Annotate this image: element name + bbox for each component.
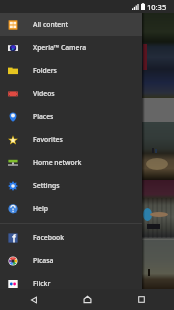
button[interactable]: Picasa <box>0 249 142 272</box>
staticText: Xperia™ Camera <box>33 43 87 52</box>
button[interactable]: Home <box>67 289 107 310</box>
staticText: Home network <box>33 158 82 167</box>
staticText: 10:35 <box>147 2 167 12</box>
staticText: Folders <box>33 66 57 75</box>
button[interactable]: Recents <box>121 289 161 310</box>
button[interactable]: Facebook <box>0 226 142 249</box>
button[interactable]: Xperia™ Camera <box>0 36 142 59</box>
button[interactable]: Help <box>0 197 142 220</box>
button[interactable]: Home network <box>0 151 142 174</box>
staticText: Flickr <box>33 279 51 288</box>
button[interactable]: Folders <box>0 59 142 82</box>
staticText: Help <box>33 204 49 213</box>
staticText: Favorites <box>33 135 63 144</box>
button[interactable]: Videos <box>0 82 142 105</box>
staticText: Places <box>33 112 54 121</box>
button[interactable]: Back <box>14 289 54 310</box>
staticText: All content <box>33 20 69 29</box>
button[interactable]: Places <box>0 105 142 128</box>
staticText: Videos <box>33 89 55 98</box>
button[interactable]: All content <box>0 13 142 36</box>
staticText: Facebook <box>33 233 65 242</box>
staticText: Settings <box>33 181 60 190</box>
button[interactable]: Flickr <box>0 272 142 295</box>
button[interactable]: Favorites <box>0 128 142 151</box>
button[interactable]: Settings <box>0 174 142 197</box>
staticText: Picasa <box>33 256 54 265</box>
